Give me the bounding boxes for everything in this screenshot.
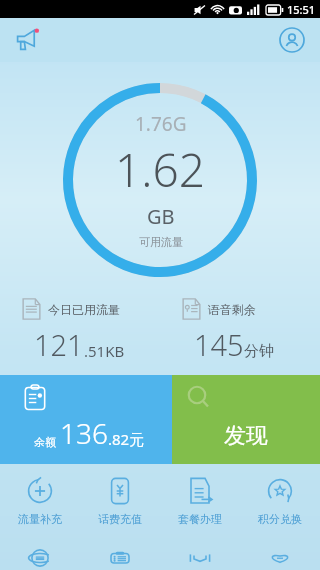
- button[interactable]: Service: [160, 546, 240, 570]
- staticText: 话费充值: [98, 512, 142, 526]
- button[interactable]: Profile: [272, 20, 312, 60]
- staticText: 今日已用流量: [48, 302, 120, 317]
- button[interactable]: Announcements: [8, 20, 48, 60]
- staticText: 语音剩余: [208, 302, 256, 317]
- button[interactable]: 语音剩余: [160, 298, 320, 364]
- staticText: 套餐办理: [178, 512, 222, 526]
- button[interactable]: 余额: [0, 375, 172, 464]
- button[interactable]: Service: [80, 546, 160, 570]
- button[interactable]: 发现: [172, 375, 320, 464]
- staticText: 积分兑换: [258, 512, 302, 526]
- staticText: 发现: [224, 422, 268, 450]
- button[interactable]: Service: [0, 546, 80, 570]
- button[interactable]: 流量补充: [0, 470, 80, 532]
- button[interactable]: 积分兑换: [240, 470, 320, 532]
- staticText: .82元: [108, 429, 145, 449]
- staticText: 145: [194, 325, 244, 364]
- button[interactable]: 套餐办理: [160, 470, 240, 532]
- staticText: 余额: [34, 435, 56, 449]
- staticText: 136: [60, 414, 108, 452]
- staticText: GB: [147, 203, 175, 230]
- staticText: 15:51: [287, 2, 316, 17]
- staticText: 可用流量: [139, 235, 183, 249]
- button[interactable]: Service: [240, 546, 320, 570]
- staticText: 流量补充: [18, 512, 62, 526]
- staticText: 分钟: [244, 342, 274, 361]
- staticText: .51KB: [84, 341, 125, 361]
- staticText: 1.62: [115, 138, 206, 201]
- staticText: 121: [34, 325, 84, 364]
- staticText: 1.76G: [135, 111, 187, 137]
- button[interactable]: 今日已用流量: [0, 298, 160, 364]
- button[interactable]: 话费充值: [80, 470, 160, 532]
